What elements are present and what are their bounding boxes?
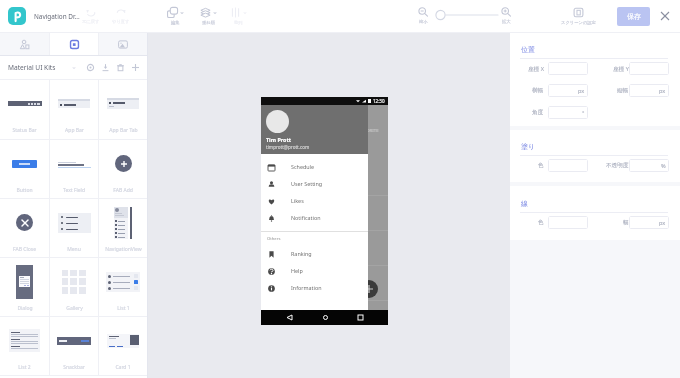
staticText: 幅	[623, 219, 629, 226]
staticText: timprott@prott.com	[266, 144, 310, 150]
staticText: Snackbar	[63, 364, 85, 371]
button[interactable]: Close	[657, 8, 673, 24]
staticText: %	[661, 162, 666, 170]
button[interactable]: 保存	[617, 7, 650, 26]
button[interactable]: Gallery	[50, 258, 98, 316]
staticText: NavigationView	[105, 246, 142, 253]
staticText: 保存	[627, 12, 641, 21]
button[interactable]: Text Field	[50, 140, 98, 198]
staticText: 拡大	[502, 19, 511, 24]
staticText: User Setting	[291, 180, 323, 187]
staticText: 重ね順	[202, 20, 215, 25]
staticText: px	[659, 219, 666, 227]
staticText: 色	[538, 162, 544, 169]
staticText: Gallery	[66, 305, 83, 312]
button[interactable]: Images	[99, 33, 147, 55]
button[interactable]: Prott home	[8, 7, 26, 25]
button[interactable]: List 2	[0, 317, 49, 375]
button[interactable]: 整列	[230, 7, 247, 26]
button[interactable]: Dialog	[0, 258, 49, 316]
button[interactable]: Help	[261, 262, 368, 279]
button[interactable]: Status Bar	[0, 80, 49, 139]
button[interactable]: Download	[101, 63, 110, 72]
button[interactable]: Components	[0, 33, 49, 55]
button[interactable]: Menu	[50, 199, 98, 257]
staticText: Notification	[291, 214, 321, 221]
button[interactable]	[548, 216, 588, 229]
staticText: 角度	[532, 109, 544, 116]
staticText: Dialog	[17, 305, 33, 312]
staticText: 12:30	[373, 98, 385, 104]
button[interactable]	[548, 159, 588, 172]
button[interactable]: Home	[317, 310, 333, 325]
staticText: FAB Close	[13, 246, 36, 253]
staticText: 位置	[521, 45, 535, 54]
staticText: 線	[521, 199, 528, 208]
staticText: App Bar	[65, 127, 84, 134]
button[interactable]: 拡大	[501, 7, 511, 26]
button[interactable]: Ranking	[261, 245, 368, 262]
button[interactable]: Information	[261, 279, 368, 296]
button[interactable]: Recents	[352, 310, 368, 325]
staticText: Help	[291, 267, 303, 274]
button[interactable]	[548, 62, 588, 75]
button[interactable]: px	[629, 216, 669, 229]
button[interactable]: %	[629, 159, 669, 172]
staticText: Material UI Kits	[8, 63, 56, 72]
button[interactable]: 重ね順	[200, 7, 217, 26]
staticText: スクリーンの設定	[561, 20, 596, 25]
button[interactable]: Hide	[86, 63, 95, 72]
button[interactable]: Card 1	[99, 317, 147, 375]
staticText: 塗り	[521, 142, 536, 151]
staticText: Menu	[67, 246, 81, 253]
staticText: App Bar Tab	[109, 127, 138, 134]
staticText: 色	[538, 219, 544, 226]
button[interactable]: App Bar Tab	[99, 80, 147, 139]
button[interactable]: FAB Add	[99, 140, 147, 198]
button[interactable]: User Setting	[261, 175, 368, 192]
staticText: Card 1	[115, 364, 131, 371]
staticText: px	[659, 87, 666, 95]
staticText: Navigation Dr...	[34, 12, 80, 21]
button[interactable]: やり直す	[112, 7, 130, 26]
button[interactable]: List 1	[99, 258, 147, 316]
staticText: List 2	[18, 364, 31, 371]
button[interactable]: Button	[0, 140, 49, 198]
button[interactable]: Delete	[116, 63, 125, 72]
button[interactable]: App Bar	[50, 80, 98, 139]
button[interactable]: スクリーンの設定	[561, 7, 596, 26]
staticText: Tim Prott	[266, 136, 292, 143]
staticText: Status Bar	[12, 127, 37, 134]
staticText: FAB Add	[113, 187, 133, 194]
button[interactable]	[629, 62, 669, 75]
staticText: 元に戻す	[82, 19, 100, 24]
button[interactable]: Notification	[261, 209, 368, 226]
button[interactable]: Likes	[261, 192, 368, 209]
button[interactable]: Add	[131, 63, 140, 72]
button[interactable]: 編集	[167, 7, 184, 26]
button[interactable]: 元に戻す	[82, 7, 100, 26]
staticText: やり直す	[112, 19, 130, 24]
button[interactable]: Back	[281, 310, 297, 325]
button[interactable]: UI kits	[50, 33, 98, 55]
staticText: 座標 Y	[613, 65, 629, 73]
button[interactable]: Add	[360, 280, 378, 298]
button[interactable]: Zoom slider	[434, 8, 498, 22]
staticText: Schedule	[291, 163, 314, 170]
staticText: 座標 X	[528, 65, 544, 73]
button[interactable]: FAB Close	[0, 199, 49, 257]
staticText: Text Field	[63, 187, 85, 194]
staticText: px	[578, 87, 585, 95]
button[interactable]: °	[548, 106, 588, 119]
staticText: Ranking	[291, 250, 312, 257]
staticText: 整列	[234, 20, 243, 25]
button[interactable]: Schedule	[261, 158, 368, 175]
button[interactable]: 縮小	[418, 7, 428, 26]
button[interactable]: px	[548, 84, 588, 97]
button[interactable]: Snackbar	[50, 317, 98, 375]
staticText: Likes	[291, 197, 304, 204]
staticText: Information	[291, 284, 322, 291]
button[interactable]: NavigationView	[99, 199, 147, 257]
button[interactable]: Material UI Kits	[0, 56, 147, 79]
button[interactable]: px	[629, 84, 669, 97]
